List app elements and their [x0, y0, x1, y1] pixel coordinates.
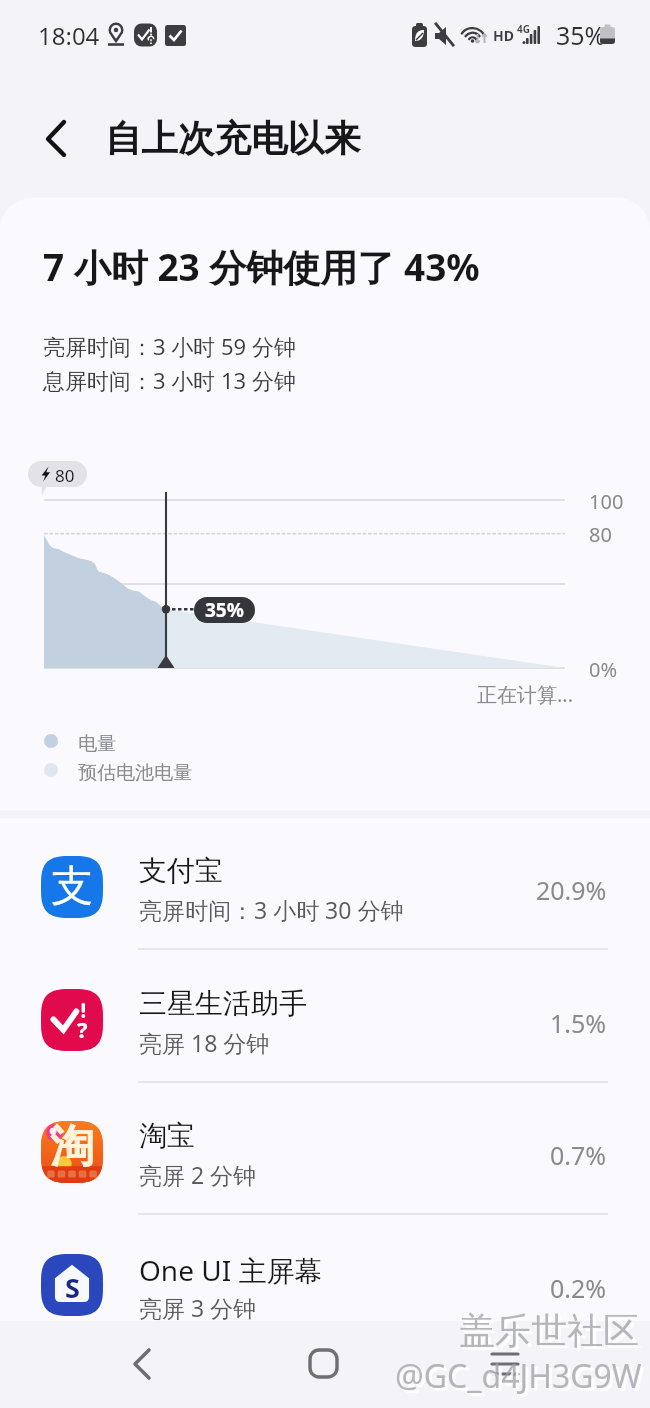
staticText: 亮屏 18 分钟	[139, 1027, 270, 1058]
staticText: ?	[77, 1014, 88, 1044]
staticText: 0.7%	[550, 1138, 607, 1172]
staticText: 0.2%	[550, 1271, 607, 1305]
staticText: 盖乐世社区	[459, 1308, 639, 1353]
staticText: 自上次充电以来	[105, 116, 361, 162]
staticText: 亮屏 3 分钟	[139, 1292, 257, 1323]
staticText: 35%	[205, 597, 244, 623]
staticText: @GC_d4JH3G9W	[395, 1354, 642, 1398]
staticText: 盖乐世社区	[462, 1311, 642, 1356]
button[interactable]: Back	[112, 1334, 172, 1394]
button[interactable]: 淘	[0, 1086, 650, 1218]
staticText: 息屏时间：3 小时 13 分钟	[43, 365, 296, 395]
staticText: 淘	[50, 1119, 94, 1174]
staticText: 亮屏时间：3 小时 59 分钟	[43, 331, 296, 361]
staticText: 80	[589, 521, 612, 548]
staticText: 电量	[78, 732, 116, 756]
staticText: @GC_d4JH3G9W	[398, 1357, 645, 1401]
staticText: 正在计算...	[477, 681, 574, 708]
button[interactable]: ?	[0, 954, 650, 1086]
staticText: 20.9%	[536, 873, 607, 907]
staticText: One UI 主屏幕	[139, 1251, 323, 1289]
staticText: 1.5%	[550, 1006, 607, 1040]
staticText: HD	[493, 26, 514, 45]
staticText: 亮屏时间：3 小时 30 分钟	[139, 894, 404, 925]
staticText: 支付宝	[139, 853, 223, 888]
staticText: 淘宝	[139, 1118, 195, 1153]
button[interactable]: 支	[0, 821, 650, 953]
staticText: 支	[51, 860, 93, 913]
staticText: 4G	[517, 22, 530, 36]
button[interactable]: Back	[22, 104, 92, 174]
staticText: 35%	[556, 18, 606, 52]
button[interactable]: Recents	[475, 1334, 535, 1394]
staticText: S	[65, 1269, 80, 1306]
button[interactable]: Home	[294, 1334, 354, 1394]
staticText: 80	[55, 464, 75, 487]
staticText: 亮屏 2 分钟	[139, 1159, 257, 1190]
staticText: 18:04	[38, 19, 100, 52]
staticText: 100	[589, 488, 624, 515]
staticText: 0%	[589, 656, 618, 683]
staticText: 三星生活助手	[139, 986, 307, 1021]
staticText: 预估电池电量	[78, 761, 192, 785]
staticText: 7 小时 23 分钟使用了 43%	[43, 241, 480, 292]
button[interactable]: S	[0, 1219, 650, 1351]
